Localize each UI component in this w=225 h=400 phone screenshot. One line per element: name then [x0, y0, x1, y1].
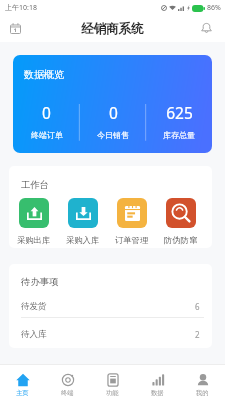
staticText: 数据概览 [24, 68, 64, 81]
staticText: 主页 [16, 389, 29, 397]
button[interactable]: 功能 [90, 365, 135, 400]
button[interactable]: 待入库 [9, 318, 212, 347]
button[interactable]: 数据概览 [13, 55, 212, 153]
button[interactable]: 订单管理 [107, 198, 156, 245]
staticText: 采购出库 [17, 235, 51, 245]
staticText: 数据 [151, 389, 164, 397]
staticText: 订单管理 [115, 235, 149, 245]
button[interactable]: Notifications [194, 15, 218, 39]
staticText: 工作台 [21, 179, 50, 191]
button[interactable]: Calendar [3, 16, 27, 40]
button[interactable]: 主页 [0, 365, 45, 400]
staticText: 待入库 [21, 329, 47, 340]
staticText: 终端订单 [31, 130, 63, 140]
staticText: 0 [109, 102, 118, 123]
staticText: 功能 [106, 389, 119, 397]
button[interactable]: 待发货 [9, 291, 212, 318]
staticText: 采购入库 [66, 235, 100, 245]
button[interactable]: 我的 [180, 365, 225, 400]
staticText: 经销商系统 [81, 21, 144, 37]
staticText: 上午10:18 [5, 3, 37, 13]
staticText: 6 [195, 301, 200, 312]
button[interactable]: 采购入库 [58, 198, 107, 245]
staticText: 今日销售 [97, 130, 129, 140]
staticText: 终端 [61, 389, 74, 397]
staticText: 待办事项 [21, 276, 59, 288]
button[interactable]: 防伪防窜 [156, 198, 205, 245]
staticText: 86% [207, 3, 221, 13]
button[interactable]: 采购出库 [9, 198, 58, 245]
staticText: 防伪防窜 [164, 235, 198, 245]
button[interactable]: 数据 [135, 365, 180, 400]
staticText: 2 [195, 329, 200, 340]
staticText: 待发货 [21, 301, 47, 312]
button[interactable]: 终端 [45, 365, 90, 400]
staticText: 我的 [196, 389, 209, 397]
staticText: 0 [42, 102, 51, 123]
staticText: 625 [166, 102, 193, 123]
staticText: 库存总量 [163, 130, 195, 140]
